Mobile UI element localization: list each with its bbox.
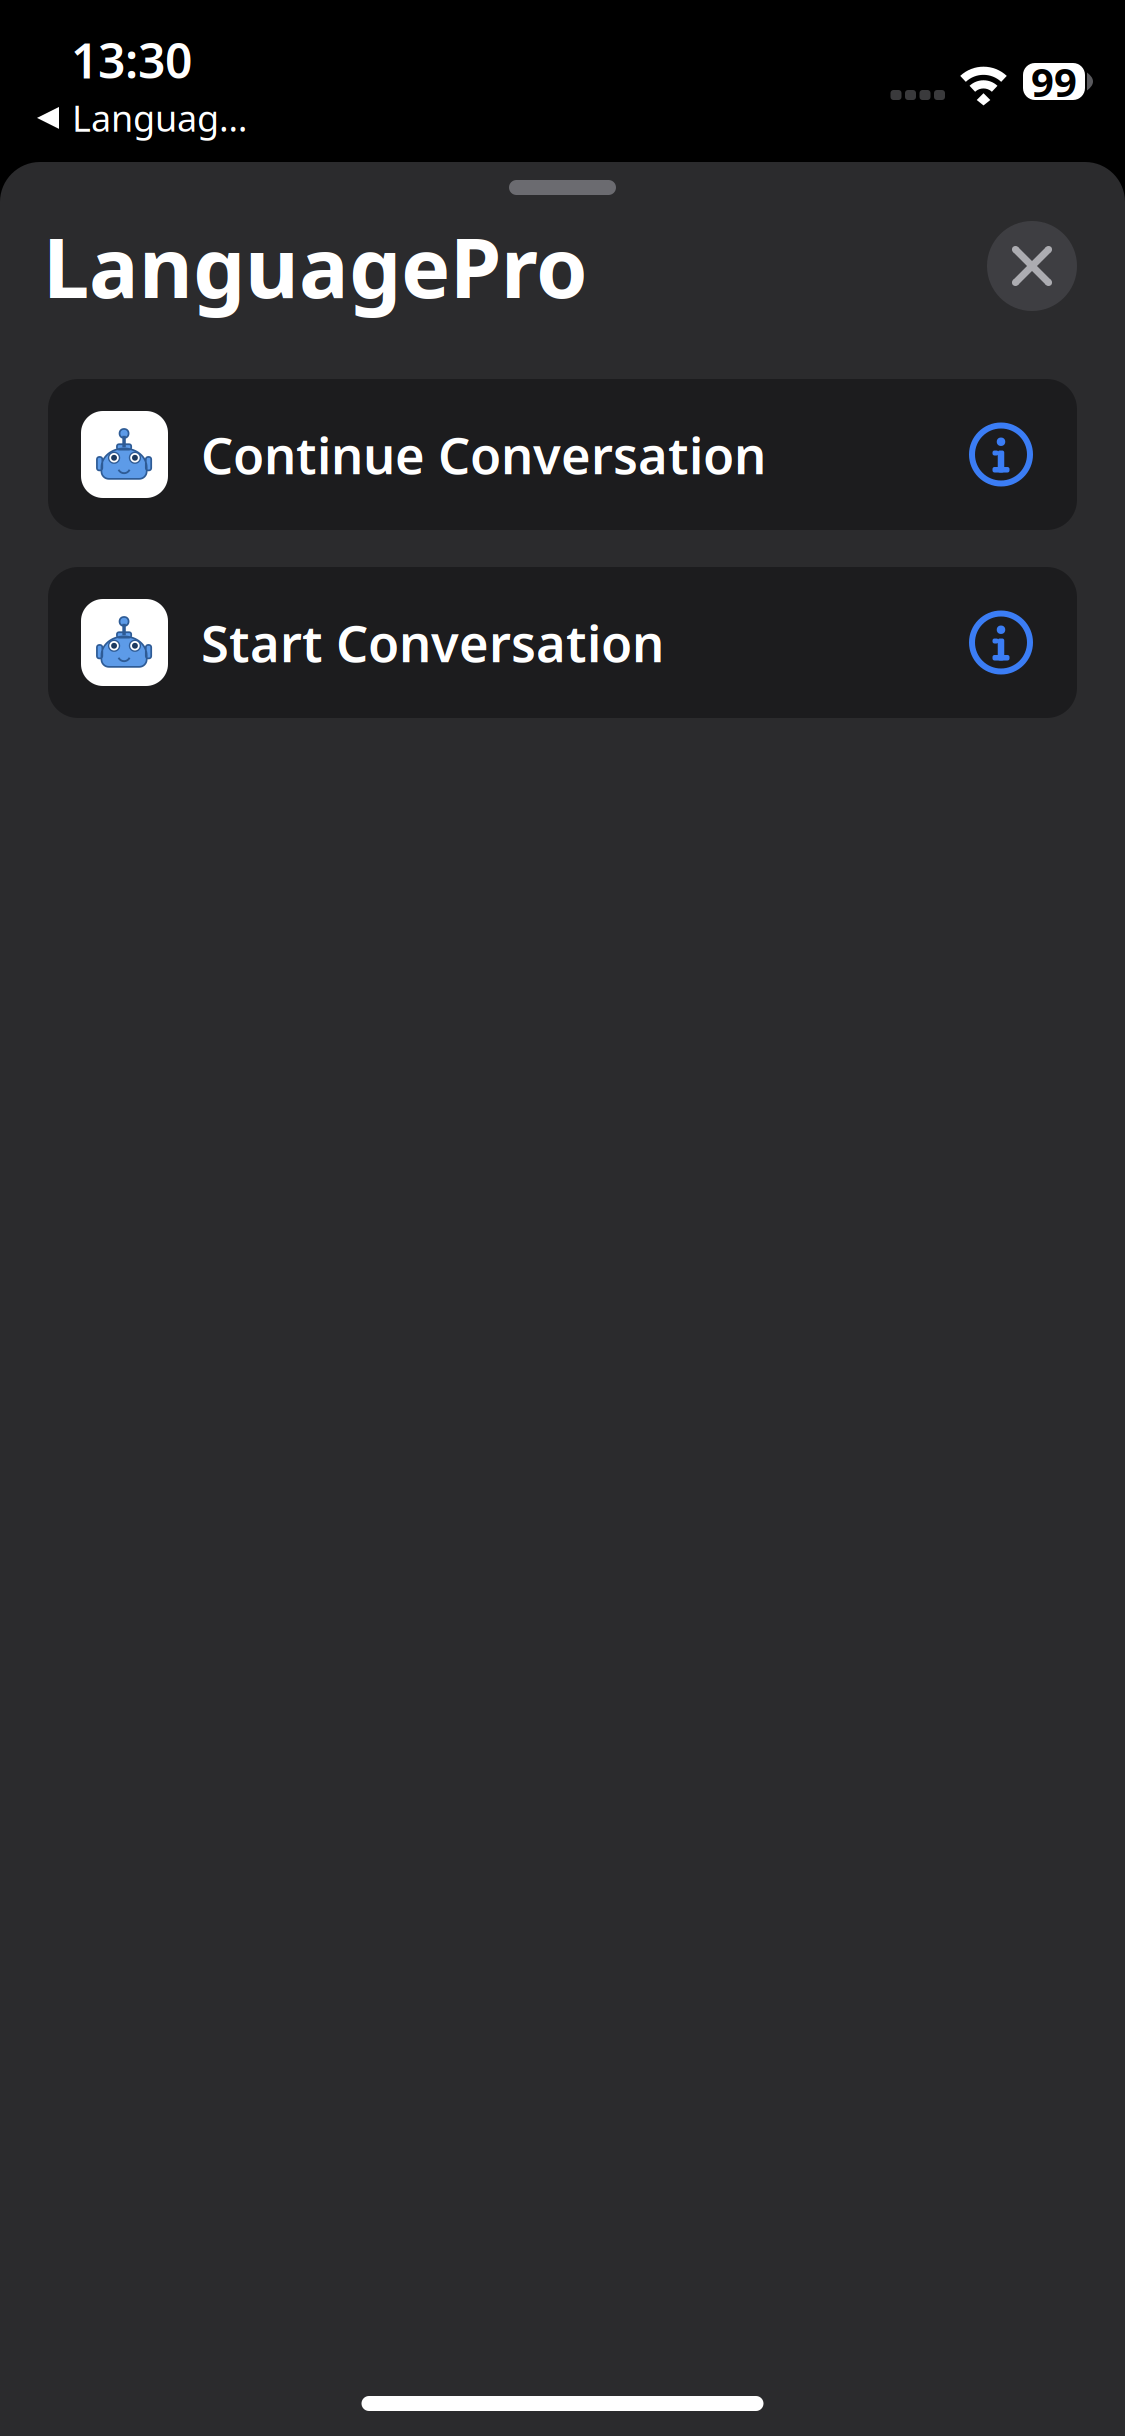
staticText: Continue Conversation xyxy=(201,421,766,488)
staticText: Languag… xyxy=(72,94,247,142)
staticText: 13:30 xyxy=(71,28,192,92)
button[interactable]: Continue Conversation xyxy=(48,379,1077,530)
staticText: LanguagePro xyxy=(43,211,588,321)
staticText: Start Conversation xyxy=(201,609,664,676)
staticText: 99 xyxy=(1031,55,1077,108)
button[interactable]: Start Conversation xyxy=(48,567,1077,718)
button[interactable]: Close xyxy=(972,206,1092,326)
